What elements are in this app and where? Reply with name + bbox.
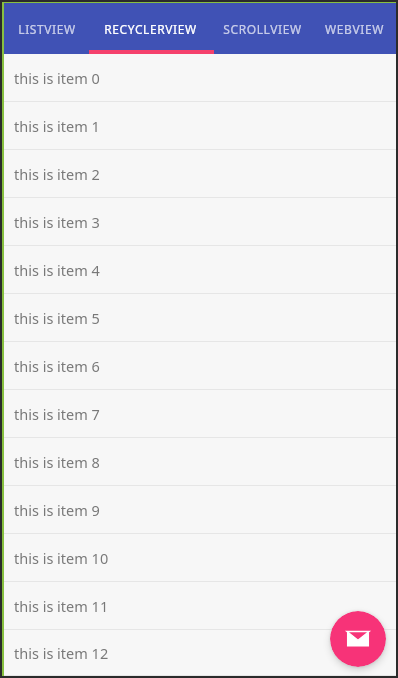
staticText: this is item 1 [14, 116, 100, 136]
button[interactable]: WEBVIEW [312, 3, 396, 54]
staticText: RECYCLERVIEW [104, 21, 197, 37]
button[interactable]: this is item 3 [4, 198, 396, 246]
staticText: this is item 10 [14, 548, 109, 568]
button[interactable]: this is item 7 [4, 390, 396, 438]
button[interactable]: SCROLLVIEW [212, 3, 312, 54]
button[interactable]: this is item 6 [4, 342, 396, 390]
staticText: this is item 12 [14, 643, 109, 663]
button[interactable]: this is item 2 [4, 150, 396, 198]
button[interactable]: this is item 0 [4, 54, 396, 102]
button[interactable]: this is item 9 [4, 486, 396, 534]
button[interactable]: this is item 10 [4, 534, 396, 582]
staticText: this is item 5 [14, 308, 100, 328]
button[interactable]: RECYCLERVIEW [89, 3, 212, 54]
staticText: this is item 8 [14, 452, 100, 472]
button[interactable]: this is item 8 [4, 438, 396, 486]
button[interactable]: this is item 1 [4, 102, 396, 150]
staticText: this is item 2 [14, 164, 100, 184]
staticText: this is item 7 [14, 404, 100, 424]
button[interactable]: this is item 11 [4, 582, 396, 630]
staticText: this is item 6 [14, 356, 100, 376]
staticText: this is item 11 [14, 596, 109, 616]
button[interactable]: this is item 5 [4, 294, 396, 342]
staticText: SCROLLVIEW [223, 21, 302, 37]
staticText: this is item 4 [14, 260, 100, 280]
button[interactable]: LISTVIEW [4, 3, 89, 54]
staticText: LISTVIEW [18, 21, 76, 37]
staticText: this is item 9 [14, 500, 100, 520]
staticText: this is item 0 [14, 68, 100, 88]
button[interactable]: this is item 4 [4, 246, 396, 294]
staticText: this is item 3 [14, 212, 100, 232]
button[interactable]: Compose message [330, 611, 386, 667]
staticText: WEBVIEW [325, 21, 384, 37]
button[interactable]: this is item 12 [4, 630, 396, 676]
